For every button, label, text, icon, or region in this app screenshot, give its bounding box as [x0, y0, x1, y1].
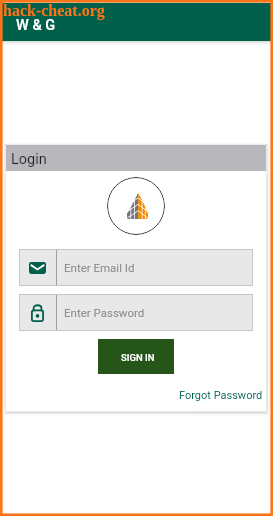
button[interactable]: Forgot Password [179, 389, 267, 402]
button[interactable]: SIGN IN [98, 339, 174, 374]
staticText: Login [11, 151, 47, 168]
button[interactable]: Password [19, 294, 253, 331]
button[interactable]: Email [19, 249, 253, 286]
staticText: W & G [16, 17, 56, 34]
staticText: hack-cheat.org [3, 2, 105, 20]
staticText: Enter Email Id [64, 261, 135, 274]
other: Email [29, 262, 46, 274]
button[interactable]: W & G [0, 3, 273, 41]
staticText: Enter Password [64, 306, 145, 319]
staticText: SIGN IN [121, 352, 155, 363]
other: Password [31, 304, 44, 322]
